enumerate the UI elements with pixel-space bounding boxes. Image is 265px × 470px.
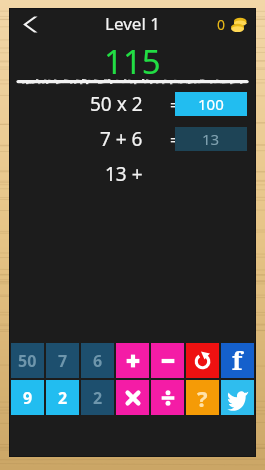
- staticText: 9: [23, 387, 33, 409]
- button[interactable]: Divide: [151, 380, 184, 415]
- button[interactable]: Minus: [151, 343, 184, 378]
- staticText: ?: [197, 383, 208, 413]
- button[interactable]: 6: [81, 343, 114, 378]
- button[interactable]: 13: [175, 127, 247, 151]
- button[interactable]: Restart: [186, 343, 219, 378]
- button[interactable]: 0: [217, 15, 248, 34]
- button[interactable]: 50: [11, 343, 44, 378]
- button[interactable]: 2: [81, 380, 114, 415]
- button[interactable]: Plus: [116, 343, 149, 378]
- staticText: 2: [58, 387, 68, 409]
- staticText: =: [170, 128, 180, 151]
- button[interactable]: Back: [16, 9, 46, 39]
- button[interactable]: Twitter: [221, 380, 254, 415]
- button[interactable]: 9: [11, 380, 44, 415]
- button[interactable]: 100: [175, 92, 247, 116]
- button[interactable]: Hint: [186, 380, 219, 415]
- button[interactable]: Multiply: [116, 380, 149, 415]
- staticText: Level 1: [105, 12, 160, 35]
- staticText: 7: [58, 350, 68, 372]
- staticText: f: [232, 343, 243, 377]
- staticText: 50 x 2: [90, 91, 143, 117]
- staticText: 50: [18, 350, 37, 372]
- staticText: 115: [104, 39, 161, 75]
- button[interactable]: Facebook: [221, 343, 254, 378]
- staticText: 13: [202, 129, 220, 149]
- staticText: 6: [93, 350, 103, 372]
- staticText: 7 + 6: [100, 126, 143, 152]
- staticText: =: [170, 93, 180, 116]
- staticText: 13 +: [105, 161, 143, 187]
- button[interactable]: 2: [46, 380, 79, 415]
- button[interactable]: 7: [46, 343, 79, 378]
- staticText: 100: [198, 94, 224, 114]
- staticText: 2: [93, 387, 103, 409]
- staticText: 0: [217, 15, 226, 34]
